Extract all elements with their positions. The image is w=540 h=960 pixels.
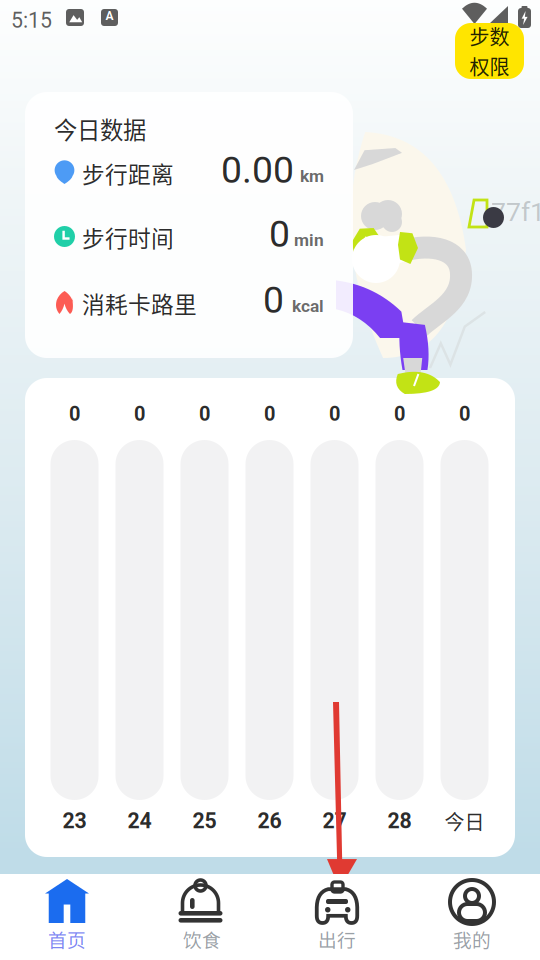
staticText: 出行 bbox=[318, 925, 356, 952]
button[interactable]: 我的 bbox=[405, 874, 540, 960]
button[interactable]: 出行 bbox=[270, 874, 405, 960]
button[interactable]: 步数 bbox=[455, 23, 524, 79]
staticText: 首页 bbox=[48, 925, 86, 952]
staticText: 我的 bbox=[453, 925, 491, 952]
staticText: 26 bbox=[257, 808, 281, 833]
staticText: 0 bbox=[329, 402, 340, 426]
staticText: 步行距离 bbox=[82, 157, 174, 189]
staticText: 25 bbox=[192, 808, 216, 833]
staticText: 0.00 bbox=[221, 148, 294, 192]
staticText: A bbox=[105, 9, 113, 23]
staticText: 0 bbox=[134, 402, 145, 426]
staticText: 0 bbox=[263, 278, 284, 322]
staticText: 0 bbox=[269, 212, 290, 256]
staticText: 0 bbox=[459, 402, 470, 426]
staticText: 0 bbox=[264, 402, 275, 426]
staticText: 5:15 bbox=[11, 8, 52, 33]
staticText: 28 bbox=[387, 808, 411, 833]
staticText: 消耗卡路里 bbox=[82, 287, 197, 319]
staticText: 今日数据 bbox=[54, 112, 146, 146]
staticText: 24 bbox=[127, 808, 151, 833]
staticText: kcal bbox=[292, 296, 324, 316]
staticText: 步行时间 bbox=[82, 221, 174, 253]
staticText: min bbox=[294, 230, 324, 250]
staticText: 饮食 bbox=[183, 925, 221, 952]
staticText: 27 bbox=[322, 808, 346, 833]
staticText: 步数 bbox=[469, 21, 509, 50]
staticText: 23 bbox=[62, 808, 86, 833]
button[interactable]: 首页 bbox=[0, 874, 135, 960]
staticText: 0 bbox=[69, 402, 80, 426]
staticText: 0 bbox=[394, 402, 405, 426]
button[interactable]: 饮食 bbox=[135, 874, 270, 960]
staticText: 0 bbox=[199, 402, 210, 426]
staticText: 77f17a bbox=[491, 196, 540, 228]
staticText: km bbox=[300, 166, 324, 186]
staticText: 今日 bbox=[444, 806, 484, 835]
staticText: 权限 bbox=[469, 51, 509, 80]
